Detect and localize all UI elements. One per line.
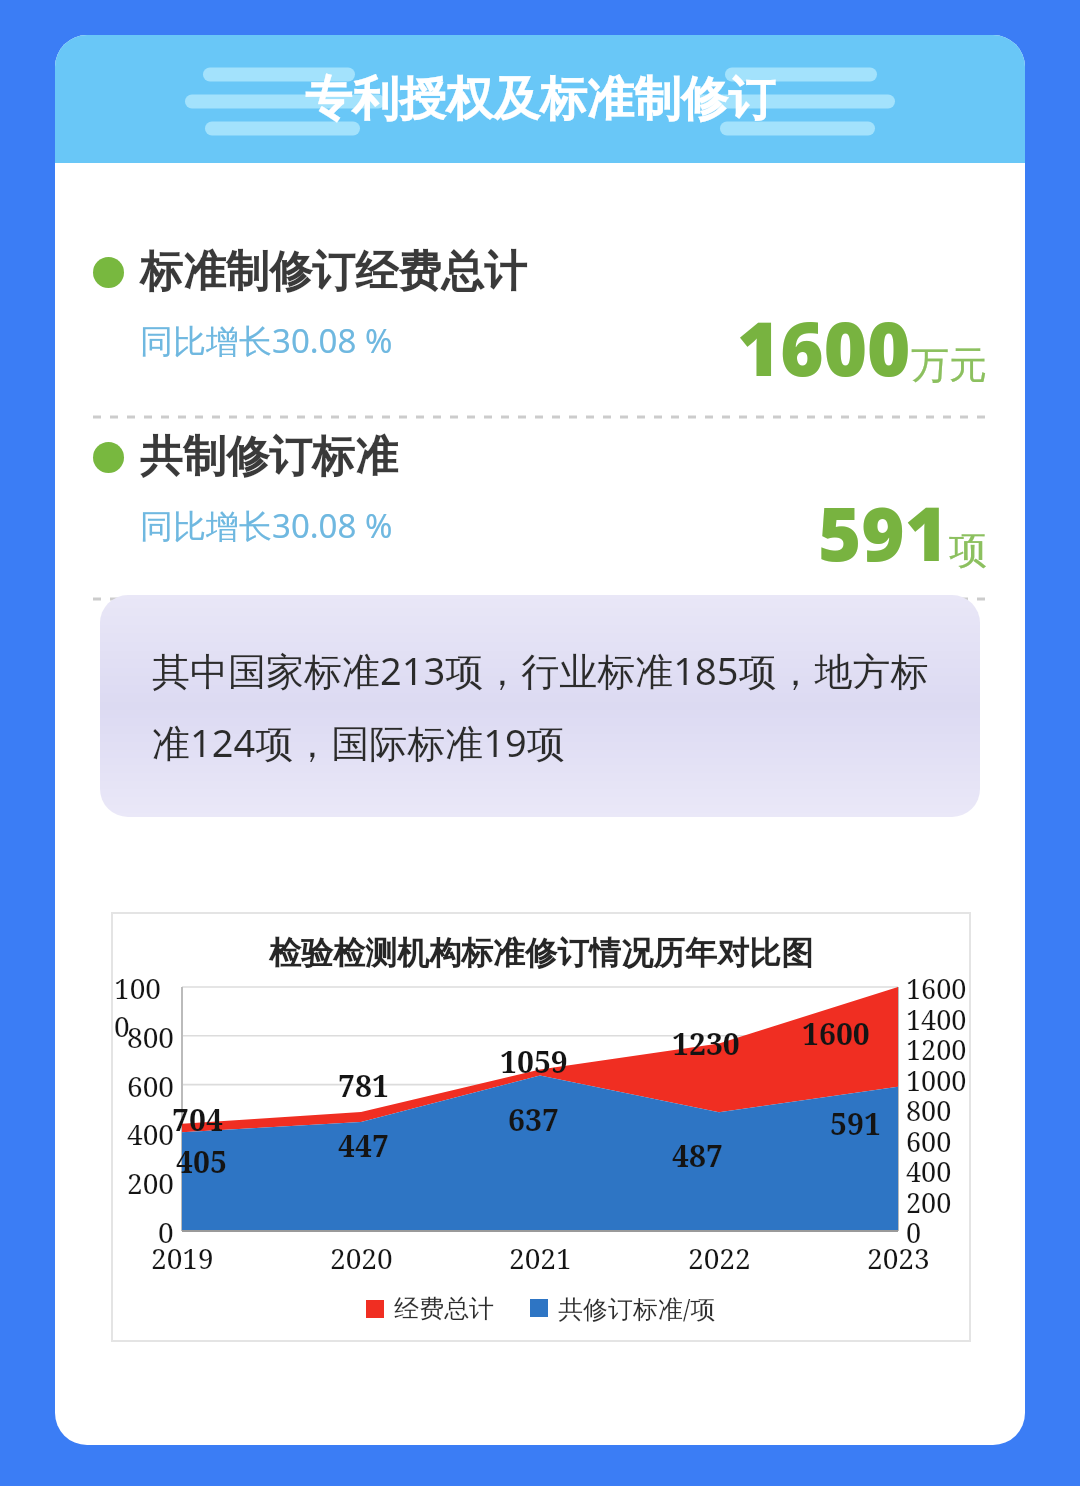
button[interactable]: 标准制修订经费总计: [55, 223, 1025, 413]
staticText: 600: [127, 1067, 174, 1105]
staticText: 2021: [509, 1239, 572, 1277]
staticText: 项: [949, 526, 987, 574]
staticText: 591: [830, 1103, 881, 1144]
staticText: 1600: [906, 970, 967, 1007]
staticText: 2019: [151, 1239, 214, 1277]
staticText: 200: [906, 1184, 952, 1221]
staticText: 781: [338, 1065, 389, 1106]
staticText: 447: [338, 1125, 389, 1166]
staticText: 1059: [500, 1041, 568, 1082]
staticText: 准124项，国际标准19项: [152, 716, 565, 768]
staticText: 同比增长30.08 %: [140, 318, 393, 363]
staticText: 1400: [906, 1001, 967, 1038]
staticText: 1000: [906, 1062, 967, 1099]
staticText: 405: [176, 1141, 227, 1182]
button[interactable]: 共制修订标准: [55, 408, 1025, 598]
staticText: 1200: [906, 1031, 967, 1068]
staticText: 2022: [688, 1239, 751, 1277]
staticText: 637: [508, 1099, 559, 1140]
button[interactable]: 经费总计: [366, 1293, 494, 1324]
staticText: 1600: [737, 297, 911, 398]
button[interactable]: 检验检测机构标准修订情况历年对比图: [112, 913, 970, 1341]
staticText: 2023: [867, 1239, 930, 1277]
staticText: 591: [818, 482, 949, 583]
staticText: 0: [158, 1213, 174, 1251]
button[interactable]: 其中国家标准213项，行业标准185项，地方标: [100, 595, 980, 817]
staticText: 800: [906, 1092, 952, 1129]
staticText: 0: [906, 1214, 922, 1251]
staticText: 共修订标准/项: [558, 1291, 716, 1325]
staticText: 经费总计: [394, 1293, 494, 1324]
staticText: 800: [127, 1018, 174, 1056]
staticText: 487: [672, 1135, 723, 1176]
staticText: 600: [906, 1123, 952, 1160]
staticText: 同比增长30.08 %: [140, 503, 393, 548]
staticText: 400: [906, 1153, 952, 1190]
staticText: 检验检测机构标准修订情况历年对比图: [269, 933, 813, 973]
staticText: 704: [172, 1099, 223, 1140]
staticText: 专利授权及标准制修订: [305, 70, 775, 129]
staticText: 标准制修订经费总计: [140, 245, 527, 299]
staticText: 万元: [911, 341, 987, 389]
staticText: 1600: [802, 1013, 870, 1054]
staticText: 其中国家标准213项，行业标准185项，地方标: [152, 644, 929, 696]
staticText: 200: [127, 1164, 174, 1202]
staticText: 1000: [114, 969, 174, 1045]
staticText: 1230: [672, 1023, 740, 1064]
staticText: 2020: [330, 1239, 393, 1277]
staticText: 400: [127, 1115, 174, 1153]
button[interactable]: 共修订标准/项: [530, 1291, 716, 1325]
staticText: 共制修订标准: [140, 430, 398, 484]
